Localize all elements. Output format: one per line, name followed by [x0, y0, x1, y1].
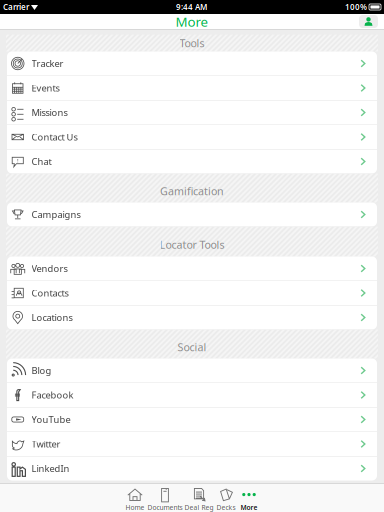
button[interactable]: Facebook [7, 383, 377, 407]
staticText: Blog [31, 364, 51, 377]
button[interactable]: Home [123, 486, 146, 512]
staticText: LinkedIn [31, 462, 69, 475]
button[interactable]: YouTube [7, 407, 377, 431]
staticText: Tools [179, 36, 204, 50]
staticText: Documents [147, 503, 182, 512]
staticText: Campaigns [31, 208, 80, 221]
staticText: Vendors [31, 262, 67, 275]
button[interactable]: Events [7, 76, 377, 100]
staticText: YouTube [31, 413, 70, 426]
staticText: Chat [31, 155, 51, 168]
staticText: 9:44 AM [176, 2, 207, 12]
staticText: Social [177, 340, 206, 354]
button[interactable]: Chat [7, 149, 377, 173]
staticText: Gamification [160, 184, 224, 198]
staticText: Decks [216, 503, 235, 512]
button[interactable]: Missions [7, 100, 377, 124]
button[interactable]: Blog [7, 358, 377, 382]
staticText: Contacts [31, 287, 68, 299]
button[interactable]: Decks [214, 486, 237, 512]
staticText: Events [31, 82, 59, 94]
staticText: Missions [31, 106, 67, 119]
staticText: More [240, 503, 257, 512]
staticText: Tracker [31, 57, 63, 70]
button[interactable]: Account [359, 15, 378, 28]
staticText: Home [125, 503, 144, 512]
button[interactable]: Locations [7, 305, 377, 329]
button[interactable]: Contact Us [7, 125, 377, 149]
staticText: Carrier [3, 2, 29, 12]
button[interactable]: More [237, 486, 260, 512]
button[interactable]: Deal Reg [183, 486, 214, 512]
button[interactable]: Campaigns [7, 202, 377, 226]
button[interactable]: Tracker [7, 51, 377, 75]
staticText: 100% [345, 2, 367, 12]
button[interactable]: Contacts [7, 281, 377, 305]
staticText: Locator Tools [159, 237, 224, 252]
staticText: Locations [31, 311, 72, 324]
staticText: Twitter [31, 438, 60, 450]
staticText: More [175, 13, 208, 30]
button[interactable]: Twitter [7, 432, 377, 456]
button[interactable]: Documents [146, 486, 183, 512]
staticText: Contact Us [31, 131, 77, 143]
staticText: Deal Reg [184, 503, 213, 512]
staticText: Facebook [31, 389, 73, 401]
button[interactable]: LinkedIn [7, 456, 377, 480]
button[interactable]: Vendors [7, 256, 377, 280]
